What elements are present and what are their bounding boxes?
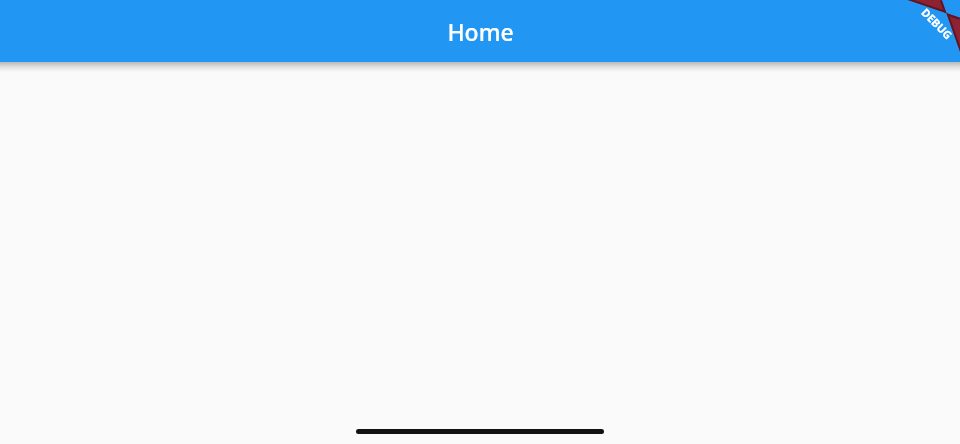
- staticText: DEBUG: [918, 5, 956, 42]
- button[interactable]: Home: [0, 0, 960, 62]
- staticText: Home: [447, 16, 514, 47]
- other: Home gesture indicator: [356, 429, 604, 434]
